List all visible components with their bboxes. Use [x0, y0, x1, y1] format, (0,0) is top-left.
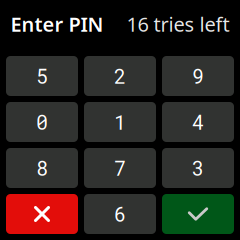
staticText: 8: [36, 155, 48, 181]
button[interactable]: 0: [6, 102, 78, 142]
button[interactable]: 3: [162, 148, 234, 188]
staticText: 9: [192, 63, 204, 89]
staticText: 1: [114, 109, 126, 135]
button[interactable]: 1: [84, 102, 156, 142]
button[interactable]: 7: [84, 148, 156, 188]
staticText: 2: [114, 63, 126, 89]
staticText: Enter PIN: [10, 11, 103, 37]
staticText: 7: [114, 155, 126, 181]
staticText: 0: [36, 109, 48, 135]
button[interactable]: 9: [162, 56, 234, 96]
button[interactable]: Confirm: [162, 194, 234, 234]
staticText: 6: [114, 201, 126, 227]
button[interactable]: 4: [162, 102, 234, 142]
staticText: 3: [192, 155, 204, 181]
staticText: 5: [36, 63, 48, 89]
staticText: 4: [192, 109, 204, 135]
button[interactable]: 5: [6, 56, 78, 96]
button[interactable]: 2: [84, 56, 156, 96]
button[interactable]: 8: [6, 148, 78, 188]
button[interactable]: 6: [84, 194, 156, 234]
staticText: 16 tries left: [126, 11, 229, 37]
button[interactable]: Cancel: [6, 194, 78, 234]
